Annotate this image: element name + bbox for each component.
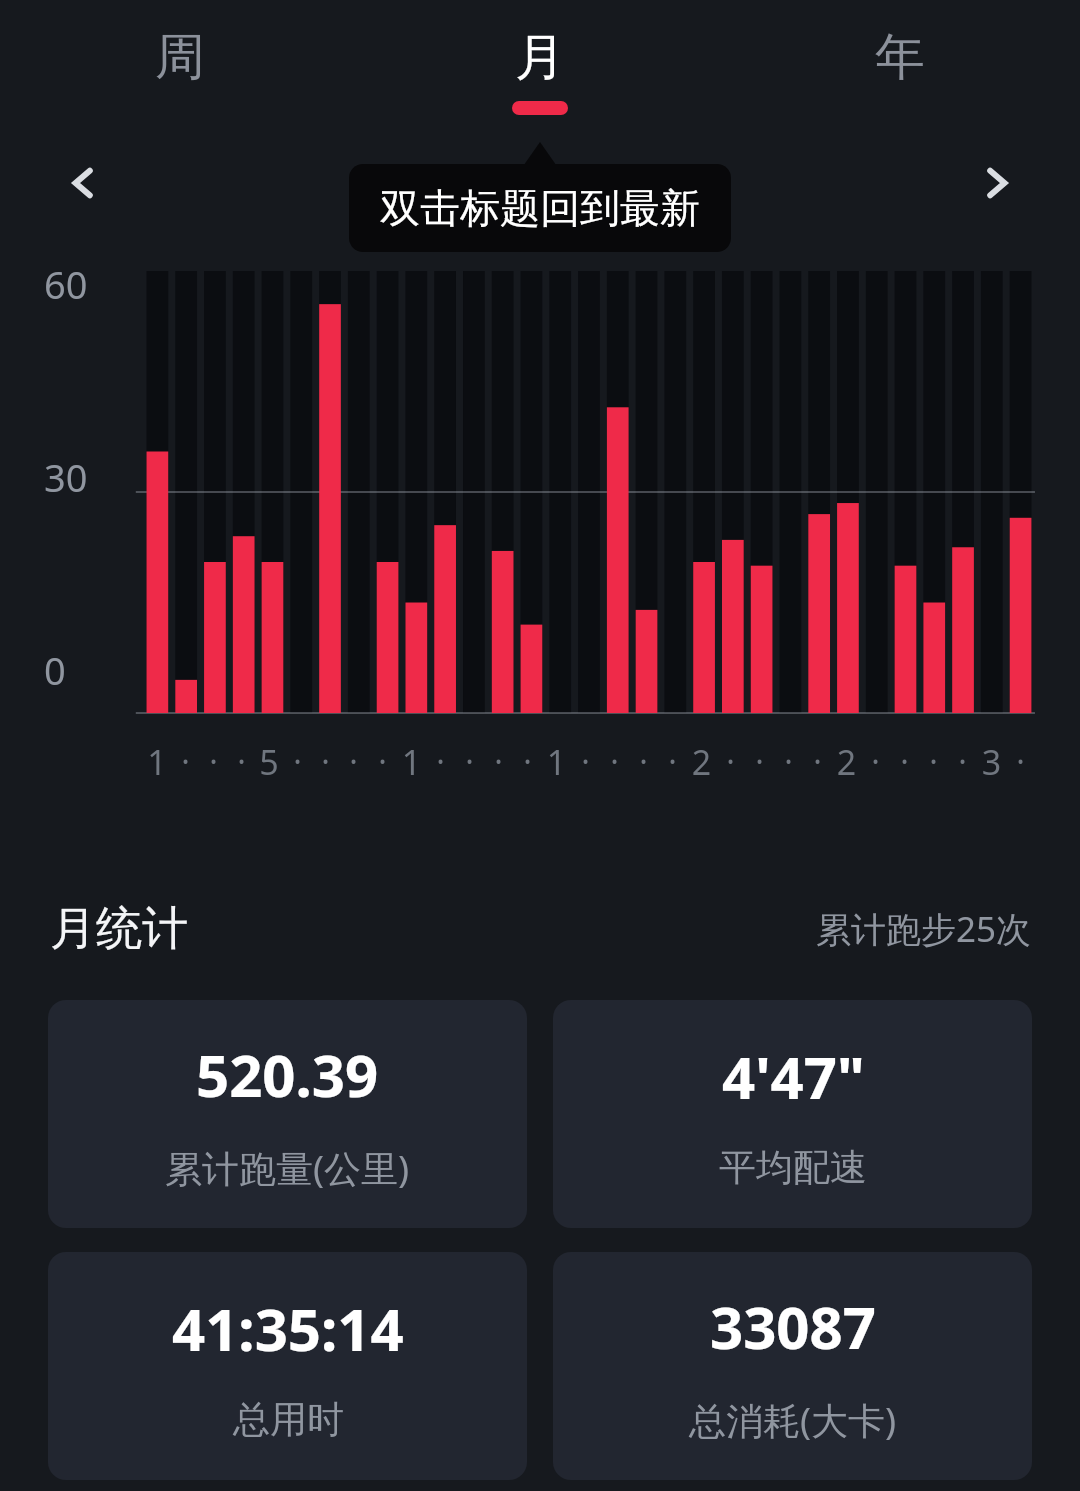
staticText: 30 — [977, 739, 1006, 789]
staticText: 累计跑步25次 — [816, 905, 1032, 953]
button[interactable]: Next month — [966, 152, 1028, 214]
button[interactable]: 520.39 — [48, 1000, 527, 1228]
staticText: · — [349, 739, 358, 783]
staticText: · — [581, 739, 590, 783]
staticText: · — [209, 739, 218, 783]
staticText: 520.39 — [196, 1035, 379, 1114]
staticText: · — [668, 739, 677, 783]
staticText: 2020年10月 — [431, 157, 649, 212]
staticText: 周 — [155, 26, 205, 89]
staticText: · — [321, 739, 330, 783]
staticText: 总消耗(大卡) — [689, 1394, 897, 1445]
staticText: · — [639, 739, 648, 783]
button[interactable]: 双击标题回到最新 — [349, 164, 731, 252]
staticText: · — [465, 739, 474, 783]
staticText: 累计跑量(公里) — [165, 1142, 410, 1193]
staticText: · — [726, 739, 735, 783]
staticText: 10 — [397, 739, 426, 789]
staticText: 41:35:14 — [172, 1289, 404, 1368]
staticText: · — [181, 739, 190, 783]
staticText: 0 — [44, 644, 66, 696]
staticText: 15 — [542, 739, 571, 789]
button[interactable]: 周 — [0, 0, 360, 125]
staticText: · — [237, 739, 246, 783]
staticText: · — [523, 739, 532, 783]
staticText: 25 — [832, 739, 861, 789]
staticText: · — [436, 739, 445, 783]
staticText: · — [755, 739, 764, 783]
staticText: · — [610, 739, 619, 783]
staticText: 33087 — [710, 1287, 876, 1366]
staticText: · — [958, 739, 967, 783]
button[interactable]: 41:35:14 — [48, 1252, 527, 1480]
staticText: 年 — [875, 26, 925, 89]
staticText: · — [378, 739, 387, 783]
staticText: · — [293, 739, 302, 783]
button[interactable]: 年 — [720, 0, 1080, 125]
button[interactable]: 4'47" — [553, 1000, 1032, 1228]
button[interactable]: 月 — [360, 0, 720, 125]
staticText: · — [494, 739, 503, 783]
staticText: 60 — [44, 258, 88, 310]
button[interactable]: 33087 — [553, 1252, 1032, 1480]
button[interactable]: Previous month — [52, 152, 114, 214]
staticText: 总用时 — [233, 1396, 344, 1443]
staticText: · — [784, 739, 793, 783]
staticText: 双击标题回到最新 — [380, 183, 700, 233]
staticText: 5 — [259, 739, 279, 785]
staticText: · — [900, 739, 909, 783]
staticText: 4'47" — [722, 1037, 865, 1116]
staticText: 1 — [147, 739, 167, 785]
staticText: 20 — [687, 739, 716, 789]
staticText: 30 — [44, 451, 88, 503]
button[interactable]: 2020年10月 — [0, 155, 1080, 213]
staticText: 月 — [515, 26, 565, 89]
staticText: · — [929, 739, 938, 783]
staticText: 月统计 — [50, 900, 188, 958]
staticText: · — [813, 739, 822, 783]
staticText: · — [871, 739, 880, 783]
staticText: · — [1016, 739, 1025, 783]
staticText: 平均配速 — [719, 1144, 867, 1191]
